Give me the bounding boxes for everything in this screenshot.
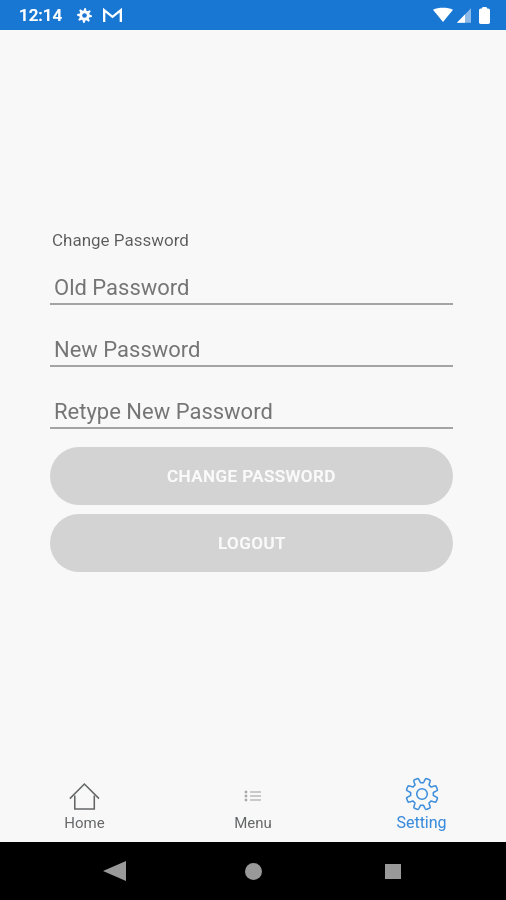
staticText: New Password	[54, 337, 201, 363]
staticText: Menu	[234, 814, 272, 832]
staticText: CHANGE PASSWORD	[167, 466, 336, 486]
button[interactable]: Home	[227, 842, 279, 900]
staticText: Retype New Password	[54, 399, 273, 425]
staticText: 12:14	[19, 5, 63, 25]
staticText: Old Password	[54, 275, 190, 301]
button[interactable]: Home	[0, 758, 168, 842]
button[interactable]: Back	[88, 842, 140, 900]
staticText: Change Password	[52, 230, 189, 250]
button[interactable]: Menu	[168, 758, 337, 842]
staticText: Setting	[396, 813, 447, 832]
button[interactable]: CHANGE PASSWORD	[50, 447, 453, 505]
button[interactable]: Recent apps	[367, 842, 419, 900]
staticText: LOGOUT	[218, 533, 286, 553]
button[interactable]: Setting	[337, 758, 506, 842]
button[interactable]: LOGOUT	[50, 514, 453, 572]
staticText: Home	[64, 814, 105, 832]
